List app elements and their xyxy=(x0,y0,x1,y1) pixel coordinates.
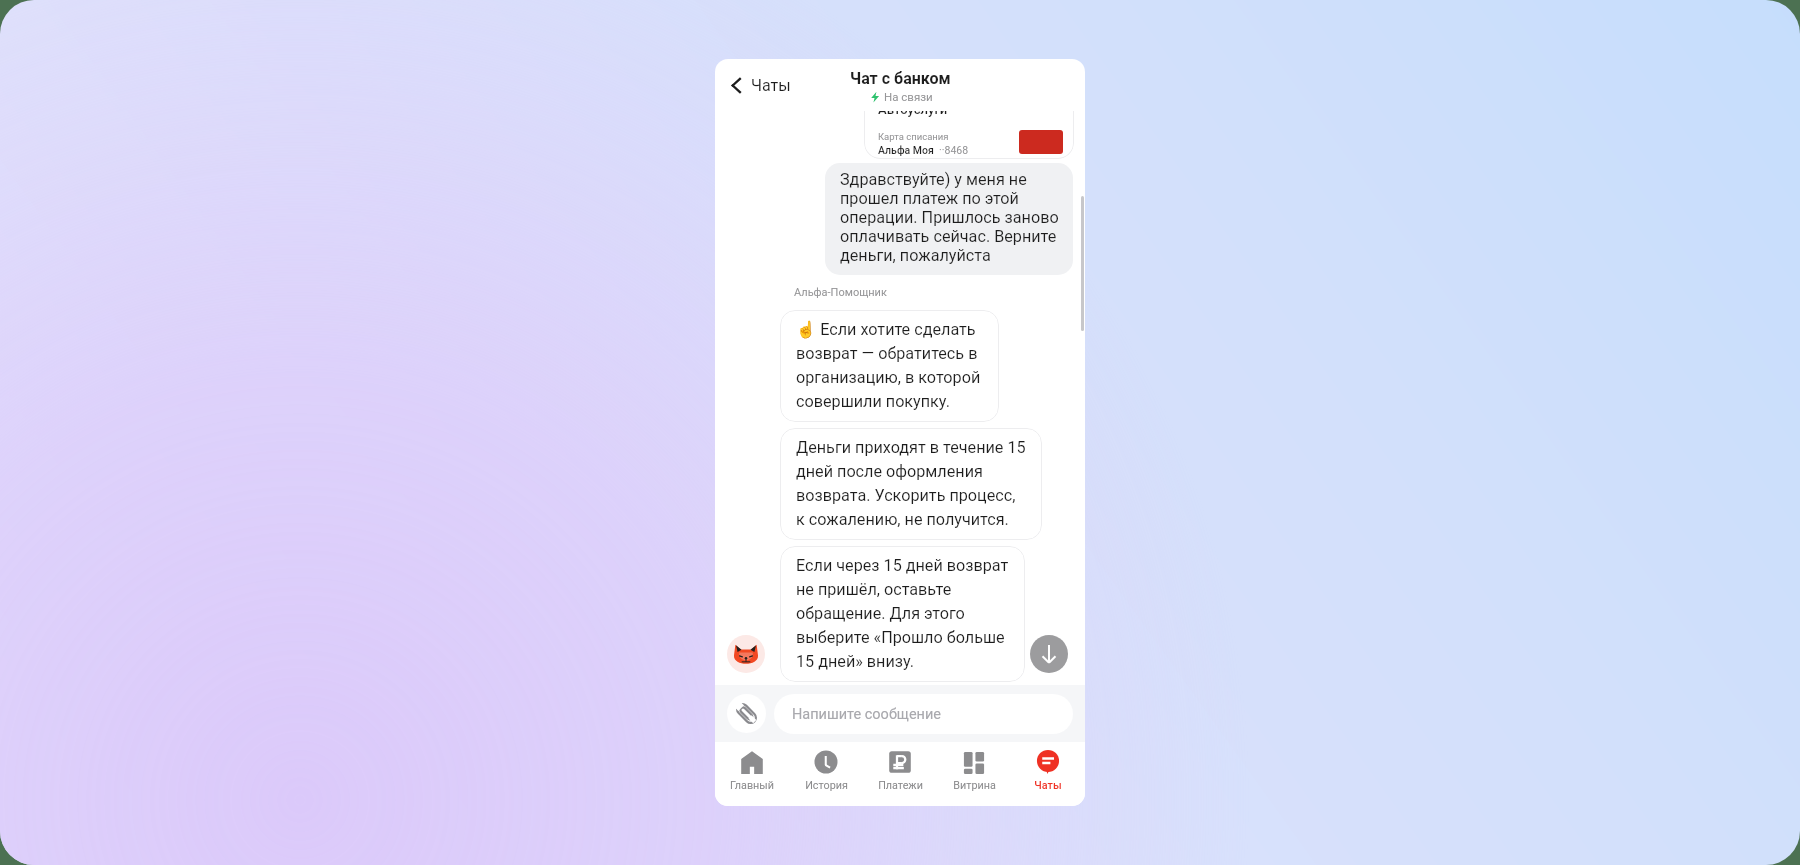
staticText: Напишите сообщение xyxy=(792,706,941,723)
staticText: Главный xyxy=(730,779,774,792)
button[interactable]: Здравствуйте) у меня не прошел платеж по… xyxy=(825,163,1073,275)
staticText: Альфа-Помощник xyxy=(794,286,887,299)
staticText: ··8468 xyxy=(939,144,969,156)
staticText: Альфа Моя xyxy=(878,144,934,156)
staticText: На связи xyxy=(884,90,933,103)
staticText: Здравствуйте) у меня не прошел платеж по… xyxy=(840,170,1061,265)
staticText: Платежи xyxy=(878,779,923,792)
button[interactable]: Scroll to bottom xyxy=(1030,635,1068,673)
staticText: Карта списания xyxy=(878,131,949,142)
button[interactable]: Если через 15 дней возврат не пришёл, ос… xyxy=(780,546,1025,682)
staticText: История xyxy=(805,779,848,792)
staticText: Витрина xyxy=(953,779,996,792)
button[interactable]: Деньги приходят в течение 15 дней после … xyxy=(780,428,1042,540)
staticText: Чаты xyxy=(1034,779,1062,792)
button[interactable]: Attach file xyxy=(727,694,766,733)
staticText: Автоуслуги xyxy=(878,111,948,117)
button[interactable]: История xyxy=(789,742,863,806)
staticText: Чаты xyxy=(751,76,791,95)
button[interactable]: Напишите сообщение xyxy=(774,694,1073,734)
button[interactable]: Чаты xyxy=(723,72,795,99)
button[interactable]: Витрина xyxy=(937,742,1011,806)
button[interactable]: Чаты xyxy=(1011,742,1085,806)
staticText: Деньги приходят в течение 15 дней после … xyxy=(796,438,1028,529)
button[interactable]: ☝️ Если хотите сделать возврат — обратит… xyxy=(780,310,999,422)
button[interactable]: Главный xyxy=(715,742,789,806)
staticText: Чат с банком xyxy=(850,69,951,88)
staticText: Если через 15 дней возврат не пришёл, ос… xyxy=(796,556,1011,671)
staticText: ☝️ Если хотите сделать возврат — обратит… xyxy=(796,320,985,411)
button[interactable]: Платежи xyxy=(863,742,937,806)
